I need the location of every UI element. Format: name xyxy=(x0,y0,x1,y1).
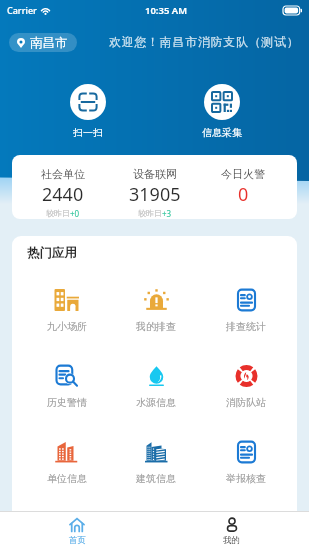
staticText: 南昌市 xyxy=(30,35,68,51)
staticText: 我的 xyxy=(223,535,240,546)
staticText: 首页 xyxy=(69,535,86,546)
button[interactable]: 我的 xyxy=(154,517,309,546)
button[interactable]: 扫一扫 xyxy=(48,84,128,139)
button[interactable]: 单位信息 xyxy=(22,441,111,485)
staticText: 九小场所 xyxy=(47,320,87,333)
button[interactable]: 我的排查 xyxy=(111,289,201,333)
staticText: 消防队站 xyxy=(226,396,266,409)
staticText: 较昨日 xyxy=(46,208,70,218)
staticText: 历史警情 xyxy=(47,396,87,409)
staticText: 建筑信息 xyxy=(136,472,176,485)
button[interactable]: 建筑信息 xyxy=(111,441,201,485)
staticText: +3 xyxy=(162,208,172,219)
button[interactable]: 历史警情 xyxy=(22,365,111,409)
staticText: 较昨日 xyxy=(138,208,162,218)
button[interactable]: 社会单位 xyxy=(23,167,103,219)
staticText: 水源信息 xyxy=(136,396,176,409)
staticText: 31905 xyxy=(129,182,181,207)
staticText: 信息采集 xyxy=(202,126,242,139)
button[interactable]: 九小场所 xyxy=(22,289,111,333)
staticText: 扫一扫 xyxy=(73,126,103,139)
staticText: 欢迎您！南昌市消防支队（测试） xyxy=(109,35,300,50)
staticText: 热门应用 xyxy=(27,245,77,261)
button[interactable]: 首页 xyxy=(0,517,154,546)
staticText: 单位信息 xyxy=(47,472,87,485)
staticText: 10:35 AM xyxy=(145,4,188,17)
button[interactable]: 水源信息 xyxy=(111,365,201,409)
button[interactable]: 举报核查 xyxy=(201,441,291,485)
button[interactable]: 消防队站 xyxy=(201,365,291,409)
staticText: 2440 xyxy=(42,182,84,207)
staticText: 我的排查 xyxy=(136,320,176,333)
staticText: 社会单位 xyxy=(41,167,85,181)
button[interactable]: 信息采集 xyxy=(182,84,262,139)
staticText: 0 xyxy=(238,182,249,207)
staticText: +0 xyxy=(70,208,80,219)
staticText: 排查统计 xyxy=(226,320,266,333)
button[interactable]: 设备联网 xyxy=(115,167,195,219)
button[interactable]: 南昌市 xyxy=(9,33,77,52)
staticText: 举报核查 xyxy=(226,472,266,485)
staticText: 今日火警 xyxy=(221,167,265,181)
staticText: Carrier xyxy=(7,4,37,16)
button[interactable]: 今日火警 xyxy=(203,167,283,208)
staticText: 设备联网 xyxy=(133,167,177,181)
button[interactable]: 排查统计 xyxy=(201,289,291,333)
